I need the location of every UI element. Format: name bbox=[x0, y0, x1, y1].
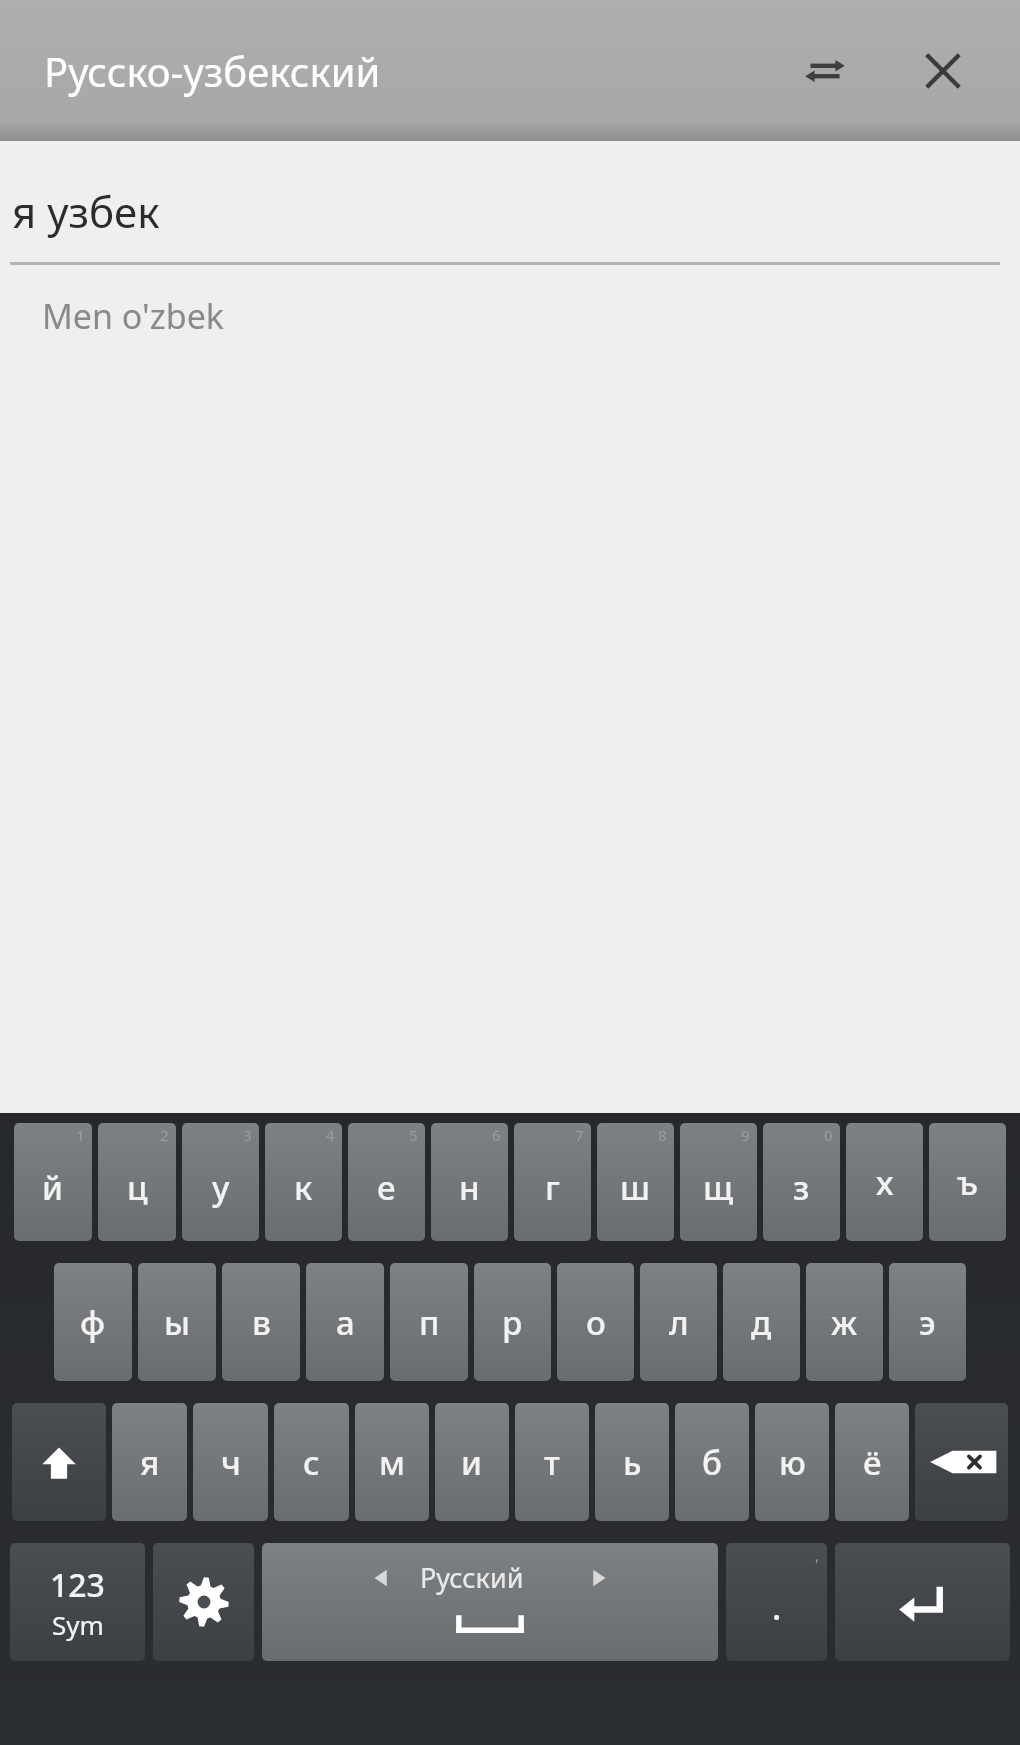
button[interactable]: , bbox=[726, 1543, 827, 1661]
button[interactable]: 1 bbox=[14, 1123, 92, 1241]
staticText: а bbox=[336, 1300, 355, 1345]
button[interactable]: и bbox=[435, 1403, 509, 1521]
staticText: 123 bbox=[50, 1563, 105, 1607]
staticText: э bbox=[919, 1300, 936, 1345]
button[interactable]: 6 bbox=[431, 1123, 508, 1241]
button[interactable]: 2 bbox=[98, 1123, 176, 1241]
staticText: б bbox=[702, 1440, 722, 1485]
button[interactable]: м bbox=[355, 1403, 429, 1521]
staticText: 3 bbox=[243, 1125, 252, 1145]
staticText: ъ bbox=[957, 1160, 979, 1205]
button[interactable]: ъ bbox=[929, 1123, 1006, 1241]
button[interactable]: 7 bbox=[514, 1123, 591, 1241]
staticText: х bbox=[876, 1160, 894, 1205]
button[interactable]: ч bbox=[193, 1403, 268, 1521]
button[interactable]: ё bbox=[835, 1403, 909, 1521]
button[interactable]: а bbox=[306, 1263, 384, 1381]
staticText: 2 bbox=[160, 1125, 169, 1145]
staticText: Русско-узбекский bbox=[44, 44, 381, 98]
staticText: ж bbox=[831, 1300, 858, 1345]
button[interactable]: ы bbox=[138, 1263, 216, 1381]
staticText: ш bbox=[620, 1165, 651, 1210]
staticText: ч bbox=[221, 1440, 241, 1485]
button[interactable]: т bbox=[515, 1403, 589, 1521]
button[interactable]: Shift bbox=[12, 1403, 106, 1521]
button[interactable]: Swap languages bbox=[782, 28, 868, 114]
staticText: ц bbox=[127, 1165, 148, 1210]
staticText: л bbox=[669, 1300, 689, 1345]
button[interactable]: 3 bbox=[182, 1123, 259, 1241]
staticText: у bbox=[212, 1165, 230, 1210]
staticText: т bbox=[544, 1440, 560, 1485]
button[interactable]: л bbox=[640, 1263, 717, 1381]
staticText: р bbox=[502, 1300, 523, 1345]
button[interactable]: Enter bbox=[835, 1543, 1010, 1661]
button[interactable]: Close bbox=[900, 28, 986, 114]
staticText: . bbox=[772, 1584, 782, 1630]
staticText: о bbox=[586, 1300, 606, 1345]
staticText: Men o'zbek bbox=[42, 293, 224, 339]
staticText: з bbox=[793, 1165, 810, 1210]
staticText: Русский bbox=[420, 1559, 570, 1596]
button[interactable]: я bbox=[112, 1403, 187, 1521]
staticText: 5 bbox=[409, 1125, 418, 1145]
staticText: й bbox=[42, 1165, 64, 1210]
staticText: 8 bbox=[658, 1125, 667, 1145]
button[interactable]: ю bbox=[755, 1403, 829, 1521]
staticText: н bbox=[459, 1165, 480, 1210]
button[interactable]: 8 bbox=[597, 1123, 674, 1241]
staticText: в bbox=[252, 1300, 271, 1345]
staticText: с bbox=[303, 1440, 320, 1485]
button[interactable]: ф bbox=[54, 1263, 132, 1381]
button[interactable]: ь bbox=[595, 1403, 669, 1521]
staticText: я узбек bbox=[12, 183, 160, 240]
button[interactable]: 9 bbox=[680, 1123, 757, 1241]
staticText: 9 bbox=[741, 1125, 750, 1145]
button[interactable]: Space bbox=[262, 1543, 718, 1661]
button[interactable]: Symbols bbox=[10, 1543, 145, 1661]
staticText: д bbox=[751, 1300, 772, 1345]
staticText: ь bbox=[623, 1440, 642, 1485]
staticText: 6 bbox=[492, 1125, 501, 1145]
staticText: 1 bbox=[76, 1125, 85, 1145]
button[interactable]: р bbox=[474, 1263, 551, 1381]
button[interactable]: Settings bbox=[153, 1543, 254, 1661]
button[interactable]: о bbox=[557, 1263, 634, 1381]
button[interactable]: х bbox=[846, 1123, 923, 1241]
button[interactable]: п bbox=[390, 1263, 468, 1381]
button[interactable]: д bbox=[723, 1263, 800, 1381]
button[interactable]: в bbox=[222, 1263, 300, 1381]
staticText: ф bbox=[80, 1300, 106, 1345]
staticText: Sym bbox=[52, 1607, 104, 1642]
staticText: ё bbox=[863, 1440, 882, 1485]
staticText: я bbox=[140, 1440, 160, 1485]
staticText: к bbox=[294, 1165, 313, 1210]
staticText: п bbox=[419, 1300, 440, 1345]
staticText: е bbox=[377, 1165, 396, 1210]
staticText: г bbox=[545, 1165, 560, 1210]
staticText: ы bbox=[164, 1300, 190, 1345]
staticText: и bbox=[461, 1440, 483, 1485]
staticText: 0 bbox=[824, 1125, 833, 1145]
staticText: 7 bbox=[575, 1125, 584, 1145]
button[interactable]: с bbox=[274, 1403, 349, 1521]
button[interactable]: Backspace bbox=[915, 1403, 1008, 1521]
staticText: , bbox=[815, 1545, 820, 1565]
button[interactable]: 0 bbox=[763, 1123, 840, 1241]
button[interactable]: 4 bbox=[265, 1123, 342, 1241]
button[interactable]: б bbox=[675, 1403, 749, 1521]
button[interactable]: э bbox=[889, 1263, 966, 1381]
staticText: щ bbox=[703, 1165, 734, 1210]
staticText: м bbox=[379, 1440, 406, 1485]
button[interactable]: 5 bbox=[348, 1123, 425, 1241]
staticText: 4 bbox=[326, 1125, 335, 1145]
staticText: ю bbox=[779, 1440, 806, 1485]
button[interactable]: ж bbox=[806, 1263, 883, 1381]
